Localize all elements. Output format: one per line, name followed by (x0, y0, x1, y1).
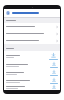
other: Open (56, 33, 58, 35)
button[interactable]: Download (4, 61, 60, 69)
button[interactable]: Download (49, 85, 58, 90)
other: Open (56, 26, 58, 28)
other: Open (56, 40, 58, 42)
button[interactable]: Download (49, 78, 58, 84)
button[interactable]: Download (4, 69, 60, 77)
button[interactable]: Download (4, 77, 60, 85)
button[interactable]: Open (4, 23, 60, 30)
button[interactable]: Documents (4, 9, 60, 17)
button[interactable]: Open (4, 37, 60, 44)
button[interactable]: Open (4, 30, 60, 37)
button[interactable]: Download (48, 53, 58, 60)
button[interactable]: Download (49, 62, 58, 68)
other: Documents (6, 11, 10, 15)
button[interactable]: Download (4, 85, 60, 90)
button[interactable]: Download (49, 70, 58, 76)
button[interactable]: Download (4, 51, 60, 61)
